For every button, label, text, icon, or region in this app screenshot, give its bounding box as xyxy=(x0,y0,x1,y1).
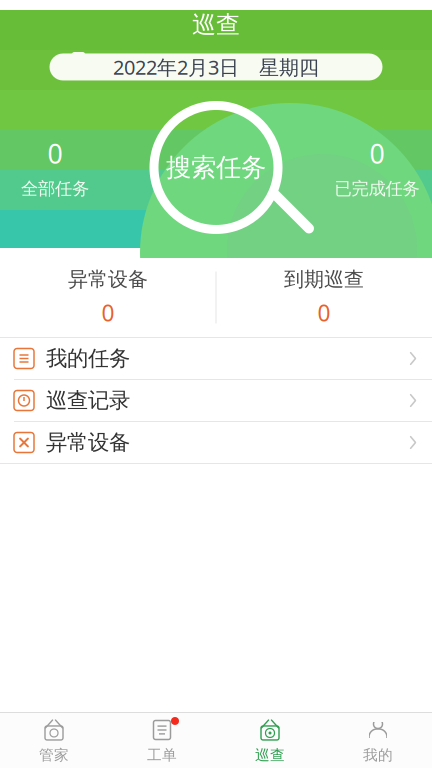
staticText: 异常设备 xyxy=(46,429,130,456)
button[interactable]: 异常设备 xyxy=(0,422,432,463)
staticText: 管家 xyxy=(39,746,69,764)
staticText: 工单 xyxy=(147,746,177,764)
button[interactable]: 到期巡查 xyxy=(216,258,431,337)
button[interactable]: 巡查 xyxy=(216,713,324,768)
staticText: 已完成任务 xyxy=(334,178,419,199)
button[interactable]: 我的 xyxy=(324,713,432,768)
staticText: 全部任务 xyxy=(21,178,89,199)
staticText: 到期巡查 xyxy=(284,267,364,292)
staticText: 我的任务 xyxy=(46,345,130,372)
staticText: 0 xyxy=(47,136,62,171)
button[interactable]: 搜索任务 xyxy=(131,92,301,242)
staticText: 我的 xyxy=(363,746,393,764)
button[interactable]: 异常设备 xyxy=(0,258,215,337)
button[interactable]: 巡查记录 xyxy=(0,380,432,421)
staticText: 巡查记录 xyxy=(46,387,130,414)
staticText: 搜索任务 xyxy=(166,152,266,183)
button[interactable]: 我的任务 xyxy=(0,338,432,379)
staticText: 2022年2月3日 星期四 xyxy=(113,54,319,80)
staticText: 0 xyxy=(369,136,384,171)
staticText: 0 xyxy=(101,298,114,328)
staticText: 异常设备 xyxy=(68,267,148,292)
button[interactable]: 工单 xyxy=(108,713,216,768)
button[interactable]: 管家 xyxy=(0,713,108,768)
staticText: 巡查 xyxy=(255,746,285,764)
staticText: 巡查 xyxy=(192,10,240,39)
staticText: 0 xyxy=(317,298,330,328)
